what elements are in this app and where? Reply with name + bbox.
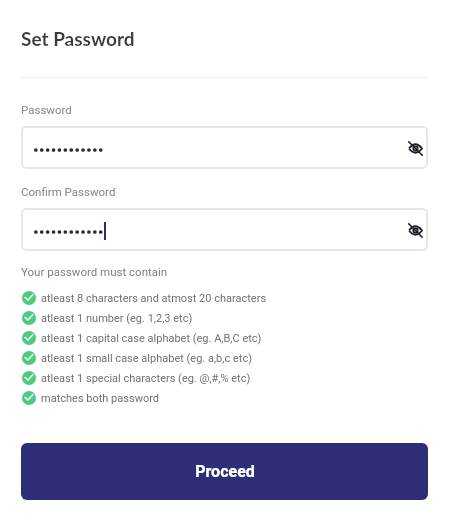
- button[interactable]: Proceed: [21, 443, 428, 500]
- staticText: Confirm Password: [21, 185, 116, 198]
- button[interactable]: Hide password: [21, 208, 428, 251]
- staticText: atleast 1 small case alphabet (eg. a,b,c…: [41, 352, 252, 365]
- button[interactable]: Hide password: [21, 126, 428, 169]
- staticText: atleast 1 number (eg. 1,2,3 etc): [41, 312, 193, 325]
- staticText: Your password must contain: [21, 265, 168, 278]
- staticText: Set Password: [21, 27, 135, 50]
- staticText: matches both password: [41, 392, 160, 405]
- button[interactable]: Hide password: [402, 217, 428, 243]
- button[interactable]: Hide password: [402, 135, 428, 161]
- staticText: atleast 1 capital case alphabet (eg. A,B…: [41, 332, 262, 345]
- staticText: Password: [21, 103, 72, 116]
- staticText: atleast 8 characters and atmost 20 chara…: [41, 292, 267, 305]
- staticText: Proceed: [195, 462, 255, 481]
- staticText: atleast 1 special characters (eg. @,#,% …: [41, 372, 251, 385]
